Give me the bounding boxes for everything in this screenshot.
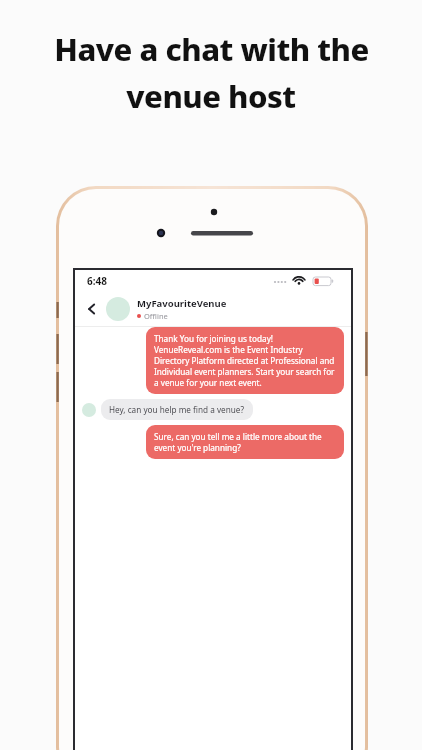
button[interactable]: Thank You for joining us today! VenueRev… [146, 327, 344, 394]
staticText: Offline [144, 311, 168, 321]
staticText: Have a chat with the [54, 28, 369, 70]
button[interactable]: Sure, can you tell me a little more abou… [146, 425, 344, 459]
staticText: Thank You for joining us today! VenueRev… [154, 333, 336, 388]
button[interactable]: Back [81, 298, 103, 320]
staticText: Sure, can you tell me a little more abou… [154, 431, 336, 453]
button[interactable]: Hey, can you help me find a venue? [101, 399, 253, 420]
staticText: venue host [126, 75, 296, 117]
staticText: 6:48 [87, 274, 107, 288]
staticText: Hey, can you help me find a venue? [109, 404, 245, 415]
staticText: MyFavouriteVenue [137, 297, 227, 310]
